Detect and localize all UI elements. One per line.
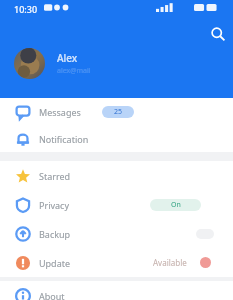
staticText: On: [171, 200, 181, 210]
staticText: Available: [153, 257, 187, 268]
staticText: Privacy: [39, 199, 70, 211]
staticText: 10:30: [14, 3, 38, 15]
staticText: Starred: [39, 170, 71, 182]
button[interactable]: Search: [208, 24, 228, 44]
button[interactable]: Starred: [0, 161, 233, 190]
button[interactable]: Messages: [0, 98, 233, 125]
staticText: Messages: [39, 106, 81, 118]
button[interactable]: Privacy: [0, 190, 233, 219]
staticText: Update: [39, 257, 71, 269]
button[interactable]: Notification: [0, 125, 233, 152]
staticText: 25: [114, 107, 123, 117]
staticText: Notification: [39, 133, 89, 145]
staticText: Backup: [39, 228, 71, 240]
staticText: alex@mail: [57, 66, 91, 76]
staticText: About: [39, 290, 65, 300]
button[interactable]: About: [0, 281, 233, 300]
staticText: Alex: [57, 51, 78, 65]
button[interactable]: Update: [0, 248, 233, 277]
button[interactable]: Alex: [0, 47, 233, 79]
button[interactable]: Backup: [0, 219, 233, 248]
